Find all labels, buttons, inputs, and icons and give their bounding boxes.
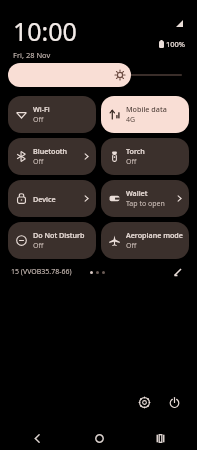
- button[interactable]: Wallet: [101, 180, 189, 217]
- staticText: Bluetooth: [33, 146, 68, 156]
- button[interactable]: Device controls: [8, 180, 96, 217]
- button[interactable]: Torch: [101, 138, 189, 175]
- staticText: Off: [33, 115, 44, 125]
- button[interactable]: Recent apps: [149, 427, 171, 449]
- staticText: 10:00: [13, 14, 77, 48]
- button[interactable]: Settings: [134, 392, 154, 412]
- staticText: 15 (VVOB35.78-66): [11, 267, 72, 277]
- button[interactable]: Home: [88, 427, 110, 449]
- staticText: 100%: [166, 39, 186, 49]
- staticText: Wi-Fi: [33, 104, 50, 114]
- staticText: Do Not Disturb: [33, 230, 85, 240]
- button[interactable]: [8, 63, 189, 87]
- button[interactable]: Bluetooth: [8, 138, 96, 175]
- staticText: Torch: [126, 146, 145, 156]
- button[interactable]: Power: [164, 392, 184, 412]
- staticText: Off: [33, 241, 44, 251]
- button[interactable]: Edit tiles: [170, 264, 186, 280]
- button[interactable]: Aeroplane mode: [101, 222, 189, 259]
- button[interactable]: Back: [26, 427, 48, 449]
- staticText: Wallet: [126, 188, 148, 198]
- staticText: Fri, 28 Nov: [13, 50, 51, 60]
- staticText: 4G: [126, 115, 136, 125]
- button[interactable]: Mobile data: [101, 96, 189, 133]
- staticText: Off: [33, 157, 44, 167]
- button[interactable]: Wi-Fi: [8, 96, 96, 133]
- staticText: Off: [126, 241, 137, 251]
- staticText: Mobile data: [126, 104, 167, 114]
- staticText: Off: [126, 157, 137, 167]
- staticText: Aeroplane mode: [126, 230, 183, 240]
- staticText: Device controls: [33, 194, 83, 204]
- staticText: Tap to open: [126, 199, 165, 209]
- button[interactable]: Do Not Disturb: [8, 222, 96, 259]
